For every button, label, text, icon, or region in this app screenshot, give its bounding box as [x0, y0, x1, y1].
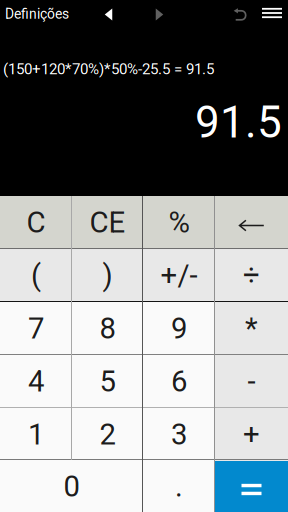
staticText: C — [26, 205, 45, 240]
button[interactable]: CE — [72, 196, 143, 249]
button[interactable]: 9 — [143, 302, 215, 355]
staticText: 3 — [171, 417, 187, 452]
button[interactable]: ÷ — [215, 249, 288, 302]
staticText: * — [245, 311, 258, 346]
button[interactable]: 0 — [0, 461, 143, 512]
staticText: 4 — [28, 364, 44, 399]
button[interactable]: Backspace — [215, 196, 288, 249]
button[interactable]: 1 — [0, 408, 72, 461]
button[interactable]: 2 — [72, 408, 143, 461]
button[interactable]: +/- — [143, 249, 215, 302]
button[interactable]: - — [215, 355, 288, 408]
staticText: 8 — [99, 311, 115, 346]
staticText: 2 — [99, 417, 115, 452]
button[interactable]: 5 — [72, 355, 143, 408]
staticText: ( — [31, 258, 41, 293]
button[interactable]: Definições — [0, 2, 77, 26]
staticText: (150+120*70%)*50%-25.5 = 91.5 — [3, 60, 214, 78]
button[interactable]: C — [0, 196, 72, 249]
staticText: % — [168, 205, 189, 240]
button[interactable]: 7 — [0, 302, 72, 355]
staticText: Definições — [5, 6, 69, 22]
button[interactable]: Menu — [258, 1, 286, 25]
button[interactable]: 3 — [143, 408, 215, 461]
button[interactable]: ( — [0, 249, 72, 302]
staticText: 1 — [28, 417, 44, 452]
button[interactable]: % — [143, 196, 215, 249]
button[interactable]: Previous expression — [94, 2, 122, 26]
button[interactable]: 8 — [72, 302, 143, 355]
button[interactable]: 4 — [0, 355, 72, 408]
staticText: + — [243, 417, 260, 452]
button[interactable]: 6 — [143, 355, 215, 408]
staticText: ) — [102, 258, 112, 293]
staticText: 0 — [63, 469, 79, 504]
staticText: - — [247, 364, 255, 399]
button[interactable]: + — [215, 408, 288, 461]
staticText: 7 — [28, 311, 44, 346]
button[interactable]: . — [143, 461, 215, 512]
staticText: . — [175, 469, 183, 504]
button[interactable]: Next expression — [145, 2, 173, 26]
staticText: ÷ — [243, 258, 260, 293]
staticText: 9 — [171, 311, 187, 346]
staticText: +/- — [160, 258, 197, 293]
staticText: 5 — [99, 364, 115, 399]
button[interactable]: ) — [72, 249, 143, 302]
staticText: CE — [89, 205, 125, 240]
button[interactable]: * — [215, 302, 288, 355]
button[interactable]: Equals — [215, 461, 288, 512]
staticText: 6 — [171, 364, 187, 399]
button[interactable]: Undo — [227, 3, 253, 27]
staticText: 91.5 — [195, 97, 282, 148]
